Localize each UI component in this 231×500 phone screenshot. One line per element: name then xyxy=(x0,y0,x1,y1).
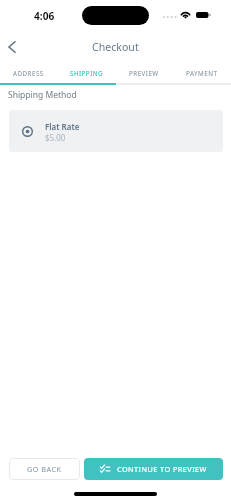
staticText: Checkout xyxy=(92,40,139,54)
button[interactable]: PREVIEW xyxy=(115,60,173,78)
staticText: ADDRESS xyxy=(13,69,44,78)
staticText: CONTINUE TO PREVIEW xyxy=(117,464,207,474)
button[interactable]: Back xyxy=(0,35,24,59)
staticText: 4:06 xyxy=(34,9,55,23)
staticText: GO BACK xyxy=(27,464,62,474)
staticText: Shipping Method xyxy=(8,89,77,101)
staticText: Flat Rate xyxy=(45,121,80,132)
staticText: PAYMENT xyxy=(186,69,218,78)
button[interactable]: ADDRESS xyxy=(0,60,57,78)
button[interactable]: PAYMENT xyxy=(173,60,231,78)
staticText: PREVIEW xyxy=(129,69,159,78)
button[interactable]: CONTINUE TO PREVIEW xyxy=(84,458,223,480)
staticText: SHIPPING xyxy=(70,69,103,78)
button[interactable]: GO BACK xyxy=(9,458,80,480)
button[interactable]: SHIPPING xyxy=(57,60,115,78)
staticText: $5.00 xyxy=(45,132,66,143)
button[interactable]: Flat Rate xyxy=(9,110,223,152)
